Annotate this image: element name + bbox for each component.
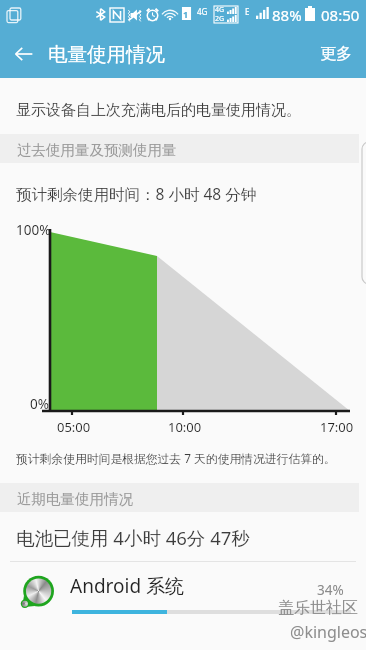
staticText: 100% — [16, 221, 51, 239]
staticText: 预计剩余使用时间是根据您过去 7 天的使用情况进行估算的。 — [16, 450, 336, 466]
staticText: 预计剩余使用时间：8 小时 48 分钟 — [16, 183, 257, 204]
staticText: 1 — [183, 8, 189, 20]
staticText: 4G — [197, 6, 208, 17]
staticText: 08:50 — [321, 5, 360, 25]
staticText: 显示设备自上次充满电后的电量使用情况。 — [16, 101, 301, 120]
staticText: 88% — [272, 5, 302, 25]
staticText: 电池已使用 4小时 46分 47秒 — [16, 525, 250, 550]
staticText: 17:00 — [320, 418, 354, 436]
button[interactable]: Android 系统 — [0, 562, 366, 624]
staticText: 2G — [215, 14, 225, 24]
button[interactable]: Back — [0, 30, 48, 78]
staticText: 4G — [215, 5, 225, 15]
staticText: @kingleos — [290, 621, 366, 643]
staticText: Android 系统 — [70, 573, 185, 599]
staticText: 盖乐世社区 — [278, 598, 358, 618]
staticText: 过去使用量及预测使用量 — [17, 141, 177, 159]
staticText: 10:00 — [168, 418, 202, 436]
staticText: 05:00 — [57, 418, 91, 436]
staticText: E — [245, 6, 250, 17]
staticText: 电量使用情况 — [48, 42, 165, 67]
staticText: 近期电量使用情况 — [17, 490, 133, 508]
staticText: 34% — [317, 581, 344, 599]
button[interactable]: 更多 — [306, 31, 366, 77]
staticText: 更多 — [320, 44, 352, 64]
staticText: 0% — [30, 395, 49, 413]
